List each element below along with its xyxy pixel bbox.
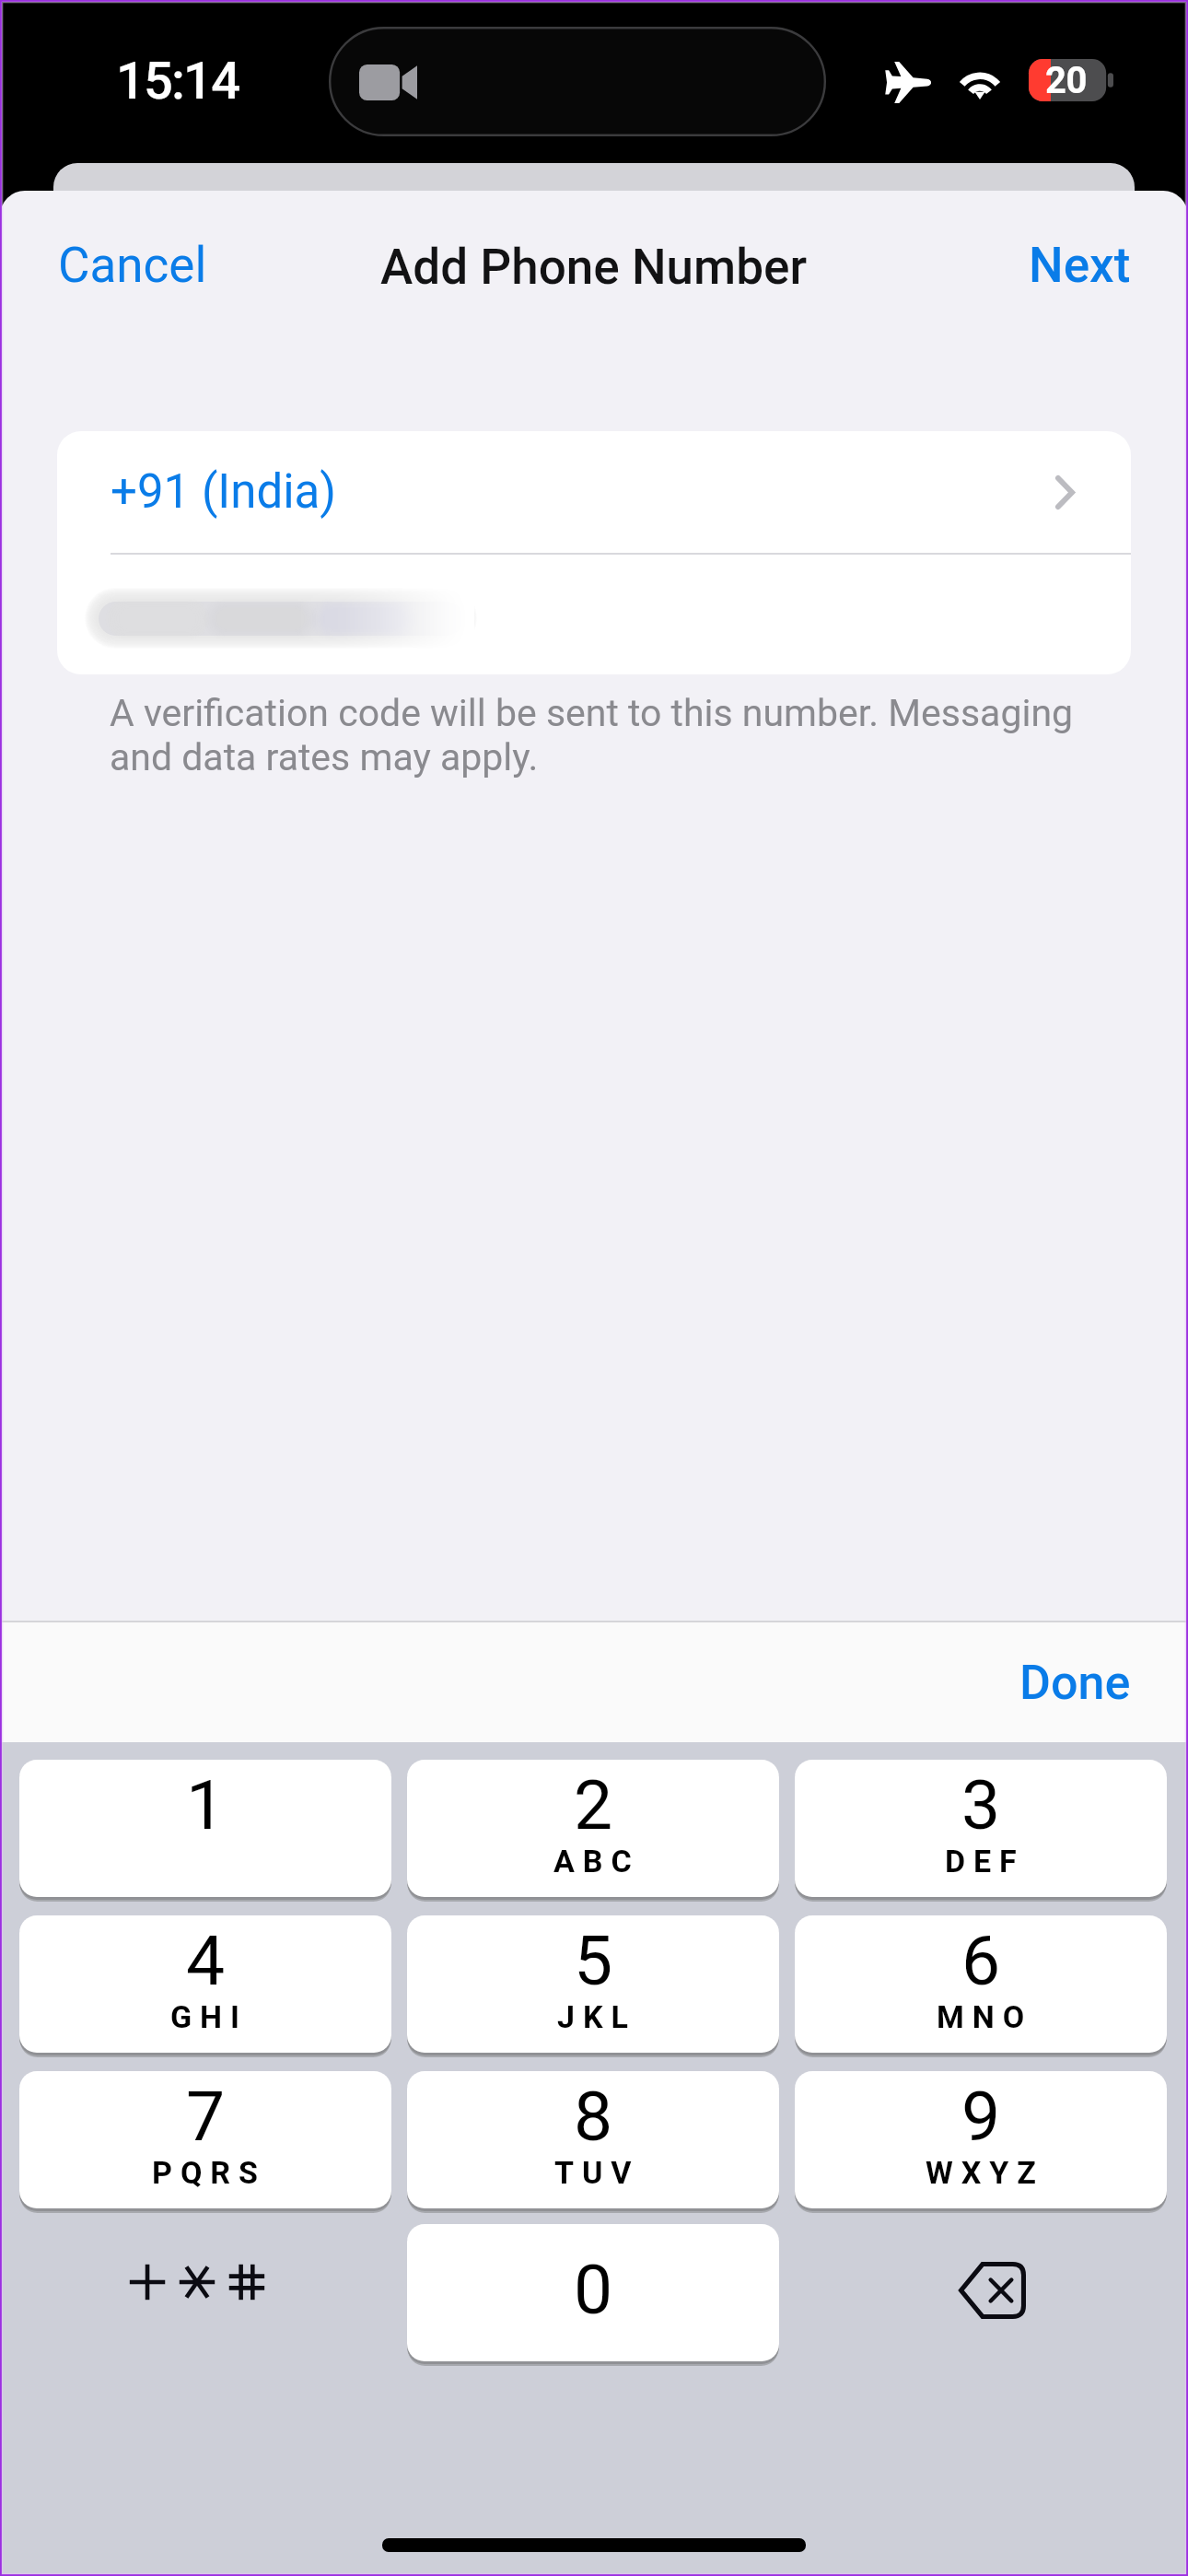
staticText: 2 xyxy=(574,1764,613,1845)
button[interactable]: 8 xyxy=(407,2071,779,2208)
staticText: 8 xyxy=(574,2076,613,2157)
button[interactable]: 5 xyxy=(407,1915,779,2053)
staticText: 1 xyxy=(186,1764,226,1845)
staticText: and data rates may apply. xyxy=(110,735,539,779)
staticText: Done xyxy=(1019,1655,1131,1711)
button[interactable]: Done xyxy=(988,1634,1188,1731)
button[interactable]: Backspace xyxy=(795,2224,1167,2361)
staticText: P Q R S xyxy=(152,2154,259,2191)
staticText: A B C xyxy=(553,1843,633,1879)
button[interactable]: 4 xyxy=(19,1915,391,2053)
staticText: 9 xyxy=(961,2076,1001,2157)
button[interactable]: Cancel xyxy=(0,217,239,314)
staticText: 6 xyxy=(961,1920,1001,2001)
button[interactable]: 0 xyxy=(407,2224,779,2361)
staticText: Add Phone Number xyxy=(380,239,808,296)
button[interactable]: Plus star hash xyxy=(19,2224,391,2361)
staticText: J K L xyxy=(557,1998,629,2035)
staticText: G H I xyxy=(170,1998,241,2035)
staticText: 5 xyxy=(574,1920,613,2001)
staticText: Next xyxy=(1029,237,1131,294)
staticText: Cancel xyxy=(58,237,207,294)
button[interactable]: 2 xyxy=(407,1760,779,1897)
staticText: 3 xyxy=(961,1764,1001,1845)
staticText: 15:14 xyxy=(116,51,239,111)
button[interactable]: 9 xyxy=(795,2071,1167,2208)
button[interactable]: 1 xyxy=(19,1760,391,1897)
button[interactable]: +91 (India) xyxy=(57,431,1131,553)
button[interactable]: 7 xyxy=(19,2071,391,2208)
staticText: 0 xyxy=(574,2249,613,2330)
button[interactable]: 6 xyxy=(795,1915,1167,2053)
staticText: 7 xyxy=(186,2076,226,2157)
staticText: T U V xyxy=(554,2154,633,2191)
staticText: +91 (India) xyxy=(111,464,337,520)
staticText: W X Y Z xyxy=(926,2154,1037,2191)
button[interactable]: Next xyxy=(997,217,1188,314)
staticText: 20 xyxy=(1045,59,1087,101)
staticText: 4 xyxy=(186,1920,226,2001)
staticText: A verification code will be sent to this… xyxy=(110,691,1074,735)
button[interactable]: 3 xyxy=(795,1760,1167,1897)
staticText: D E F xyxy=(945,1843,1018,1879)
staticText: M N O xyxy=(937,1998,1026,2035)
